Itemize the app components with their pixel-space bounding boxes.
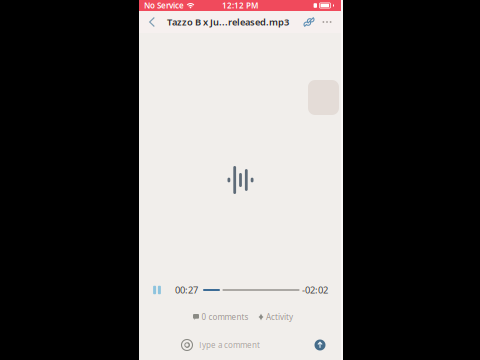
- button[interactable]: Pause: [148, 281, 166, 299]
- staticText: Tazzo B x Ju...released.mp3: [167, 16, 289, 28]
- button[interactable]: More options: [318, 11, 336, 33]
- staticText: Type a comment: [198, 340, 260, 350]
- button[interactable]: 0 comments: [193, 312, 248, 322]
- button[interactable]: Back: [143, 11, 159, 33]
- staticText: 12:12 PM: [222, 0, 258, 11]
- staticText: 0 comments: [201, 312, 248, 322]
- staticText: 00:27: [175, 284, 198, 296]
- button[interactable]: Activity: [258, 312, 293, 322]
- staticText: Activity: [266, 312, 293, 322]
- button[interactable]: Send comment: [311, 335, 329, 355]
- button[interactable]: Copy link: [300, 11, 318, 33]
- button[interactable]: Mention someone: [180, 335, 194, 355]
- staticText: -02:02: [302, 284, 328, 296]
- staticText: No Service: [144, 0, 184, 11]
